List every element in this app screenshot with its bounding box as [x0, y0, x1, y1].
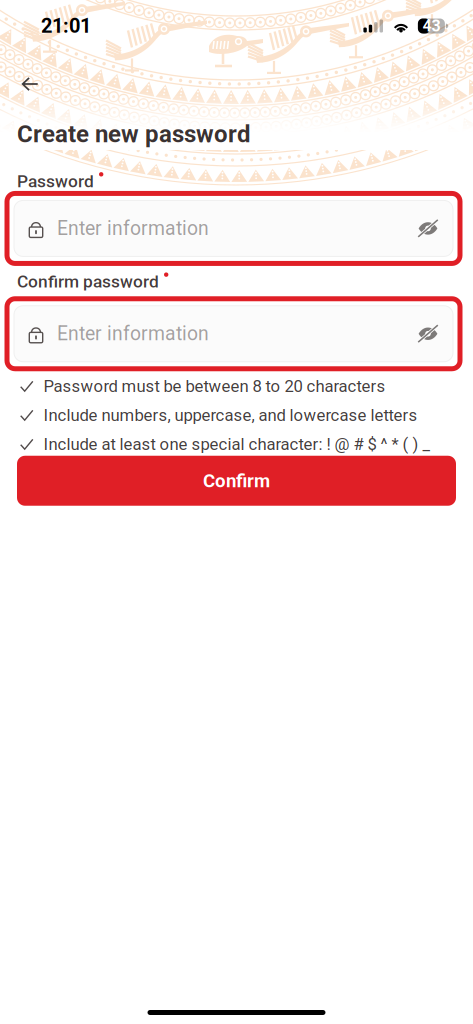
staticText: Password must be between 8 to 20 charact… — [43, 376, 385, 396]
staticText: Enter information — [57, 322, 209, 345]
staticText: Enter information — [57, 217, 209, 240]
staticText: Password — [17, 171, 94, 191]
staticText: Confirm password — [17, 271, 159, 292]
button[interactable]: Enter information — [7, 299, 460, 369]
staticText: 21:01 — [41, 14, 91, 38]
staticText: Confirm — [203, 470, 270, 492]
staticText: Include numbers, uppercase, and lowercas… — [43, 405, 417, 425]
button[interactable]: Back — [8, 64, 52, 104]
staticText: Include at least one special character: … — [43, 434, 430, 454]
button[interactable]: Enter information — [7, 193, 460, 263]
staticText: Create new password — [17, 120, 251, 148]
staticText: 43 — [422, 17, 440, 35]
button[interactable]: Confirm — [17, 456, 456, 506]
